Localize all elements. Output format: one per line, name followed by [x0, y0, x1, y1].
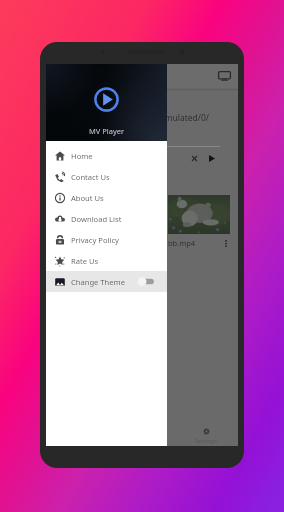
button[interactable]: More options: [222, 238, 230, 248]
staticText: /storage/emulated/0/: [123, 112, 209, 124]
staticText: Rate Us: [71, 256, 99, 266]
staticText: Privacy Policy: [71, 235, 119, 245]
button[interactable]: Clear selection: [186, 150, 203, 167]
staticText: bb.mp4: [168, 238, 196, 248]
button[interactable]: bb.mp4: [168, 195, 230, 248]
button[interactable]: Cast to screen: [216, 68, 232, 84]
button[interactable]: Privacy Policy: [46, 229, 167, 250]
button[interactable]: Download List: [46, 208, 167, 229]
staticText: Change Theme: [71, 277, 125, 287]
button[interactable]: Play all: [203, 150, 220, 167]
staticText: MV Player: [89, 126, 125, 136]
button[interactable]: Home: [46, 145, 167, 166]
button[interactable]: Settings: [174, 419, 238, 446]
staticText: Download List: [71, 214, 122, 224]
button[interactable]: Contact Us: [46, 166, 167, 187]
button[interactable]: Toggle dark theme: [136, 276, 155, 287]
staticText: Contact Us: [71, 172, 110, 182]
button[interactable]: Change Theme: [46, 271, 167, 292]
staticText: Settings: [195, 437, 218, 445]
button[interactable]: About Us: [46, 187, 167, 208]
button[interactable]: Rate Us: [46, 250, 167, 271]
staticText: Home: [71, 151, 93, 161]
staticText: About Us: [71, 193, 104, 203]
